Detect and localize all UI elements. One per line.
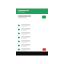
button[interactable]	[16, 35, 48, 39]
button[interactable]	[16, 27, 48, 31]
button[interactable]	[16, 47, 48, 51]
button[interactable]	[16, 39, 48, 43]
button[interactable]	[16, 31, 48, 35]
button[interactable]	[16, 43, 48, 47]
button[interactable]	[16, 23, 48, 27]
